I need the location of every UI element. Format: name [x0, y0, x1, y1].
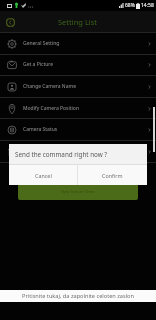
- staticText: Setting List: [58, 17, 98, 27]
- button[interactable]: General Setting: [0, 33, 156, 54]
- staticText: Change Camera Name: [23, 83, 76, 90]
- staticText: Pritisnite tukaj, da zapolnite celoten z…: [22, 292, 134, 300]
- button[interactable]: Cancel: [9, 165, 77, 185]
- staticText: Confirm: [102, 172, 123, 179]
- button[interactable]: Back: [4, 16, 16, 28]
- staticText: Sync Server Time: [61, 189, 95, 195]
- button[interactable]: Delete Camera: [0, 141, 156, 162]
- staticText: 14:58: [141, 2, 154, 9]
- button[interactable]: Pritisnite tukaj, da zapolnite celoten z…: [0, 290, 156, 302]
- staticText: Modify Camera Position: [23, 105, 79, 112]
- button[interactable]: Camera Status: [0, 119, 156, 140]
- staticText: Get a Picture: [23, 61, 54, 68]
- staticText: Send the command right now ?: [15, 150, 108, 159]
- button[interactable]: Sync Server Time: [18, 183, 138, 200]
- staticText: Camera Status: [23, 126, 58, 133]
- button[interactable]: Change Camera Name: [0, 76, 156, 97]
- button[interactable]: Confirm: [78, 165, 147, 185]
- staticText: 68%: [125, 2, 135, 9]
- staticText: General Setting: [23, 40, 60, 47]
- staticText: Cancel: [35, 172, 52, 179]
- button[interactable]: Get a Picture: [0, 54, 156, 75]
- button[interactable]: Modify Camera Position: [0, 98, 156, 119]
- staticText: Delete Camera: [23, 148, 58, 155]
